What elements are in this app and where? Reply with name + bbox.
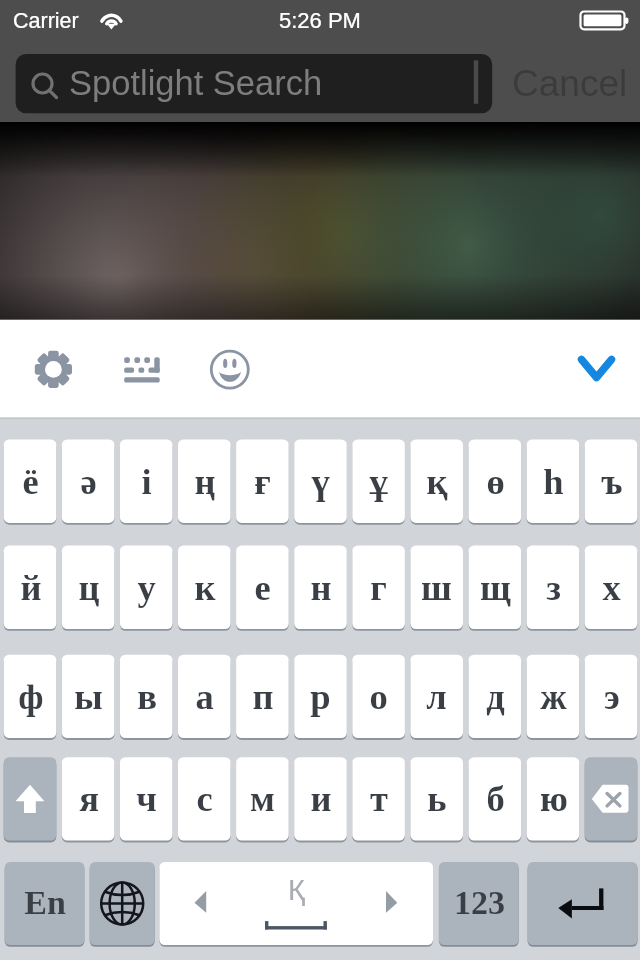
- button[interactable]: е: [236, 546, 289, 629]
- button[interactable]: Backspace: [585, 757, 638, 840]
- staticText: в: [137, 676, 157, 716]
- button[interactable]: 123: [439, 862, 519, 945]
- button[interactable]: ю: [527, 757, 580, 840]
- staticText: д: [486, 676, 505, 716]
- button[interactable]: э: [585, 655, 638, 738]
- staticText: л: [426, 676, 447, 716]
- staticText: а: [195, 676, 214, 716]
- staticText: э: [604, 676, 620, 716]
- button[interactable]: Shift: [4, 757, 57, 840]
- staticText: ә: [80, 461, 97, 501]
- staticText: к: [194, 567, 216, 607]
- staticText: щ: [480, 567, 511, 607]
- button[interactable]: ұ: [352, 440, 405, 523]
- button[interactable]: і: [120, 440, 173, 523]
- button[interactable]: Space: [159, 862, 433, 945]
- button[interactable]: н: [294, 546, 347, 629]
- staticText: һ: [543, 461, 564, 501]
- button[interactable]: Spotlight Search: [15, 54, 492, 113]
- staticText: ғ: [254, 461, 271, 501]
- staticText: я: [79, 778, 99, 818]
- staticText: г: [370, 567, 387, 607]
- button[interactable]: и: [294, 757, 347, 840]
- button[interactable]: о: [352, 655, 405, 738]
- button[interactable]: ч: [120, 757, 173, 840]
- staticText: п: [252, 676, 274, 716]
- staticText: 123: [454, 884, 505, 922]
- button[interactable]: Return: [528, 862, 638, 945]
- staticText: н: [310, 567, 332, 607]
- staticText: ц: [78, 567, 100, 607]
- staticText: ь: [427, 778, 447, 818]
- button[interactable]: к: [178, 546, 231, 629]
- button[interactable]: Hide keyboard: [568, 342, 625, 397]
- button[interactable]: ь: [410, 757, 463, 840]
- staticText: 5:26 PM: [279, 8, 361, 33]
- button[interactable]: б: [469, 757, 522, 840]
- button[interactable]: п: [236, 655, 289, 738]
- button[interactable]: с: [178, 757, 231, 840]
- staticText: ф: [18, 676, 44, 716]
- staticText: Cancel: [512, 63, 628, 104]
- button[interactable]: т: [352, 757, 405, 840]
- staticText: ы: [74, 676, 103, 716]
- button[interactable]: Cancel: [505, 54, 635, 113]
- staticText: ұ: [369, 461, 388, 501]
- staticText: ж: [540, 676, 567, 716]
- button[interactable]: Keyboard layout: [117, 345, 166, 394]
- staticText: ө: [486, 461, 505, 501]
- button[interactable]: Emoji: [206, 345, 255, 394]
- staticText: Қ: [288, 874, 305, 906]
- button[interactable]: щ: [469, 546, 522, 629]
- staticText: ң: [194, 461, 216, 501]
- button[interactable]: ң: [178, 440, 231, 523]
- button[interactable]: ә: [62, 440, 115, 523]
- staticText: ё: [22, 461, 39, 501]
- button[interactable]: En: [5, 862, 85, 945]
- button[interactable]: һ: [527, 440, 580, 523]
- staticText: р: [310, 676, 331, 716]
- button[interactable]: м: [236, 757, 289, 840]
- button[interactable]: қ: [410, 440, 463, 523]
- button[interactable]: а: [178, 655, 231, 738]
- staticText: ъ: [601, 461, 623, 501]
- button[interactable]: у: [120, 546, 173, 629]
- staticText: ч: [136, 778, 157, 818]
- button[interactable]: я: [62, 757, 115, 840]
- button[interactable]: р: [294, 655, 347, 738]
- button[interactable]: ө: [469, 440, 522, 523]
- button[interactable]: х: [585, 546, 638, 629]
- staticText: т: [370, 778, 388, 818]
- button[interactable]: д: [469, 655, 522, 738]
- button[interactable]: г: [352, 546, 405, 629]
- staticText: о: [369, 676, 388, 716]
- staticText: х: [602, 567, 621, 607]
- staticText: с: [196, 778, 213, 818]
- staticText: ү: [311, 461, 330, 501]
- button[interactable]: ш: [410, 546, 463, 629]
- button[interactable]: Next keyboard: [90, 862, 155, 945]
- staticText: ю: [540, 778, 568, 818]
- staticText: б: [486, 778, 505, 818]
- staticText: и: [310, 778, 332, 818]
- staticText: у: [137, 567, 156, 607]
- button[interactable]: л: [410, 655, 463, 738]
- button[interactable]: в: [120, 655, 173, 738]
- button[interactable]: ү: [294, 440, 347, 523]
- staticText: і: [141, 461, 152, 501]
- button[interactable]: з: [527, 546, 580, 629]
- button[interactable]: й: [4, 546, 57, 629]
- button[interactable]: ж: [527, 655, 580, 738]
- staticText: ш: [421, 567, 452, 607]
- button[interactable]: ғ: [236, 440, 289, 523]
- button[interactable]: ъ: [585, 440, 638, 523]
- button[interactable]: ы: [62, 655, 115, 738]
- staticText: м: [250, 778, 275, 818]
- button[interactable]: ё: [4, 440, 57, 523]
- button[interactable]: ф: [4, 655, 57, 738]
- staticText: з: [546, 567, 561, 607]
- staticText: Carrier: [13, 9, 79, 33]
- button[interactable]: Settings: [29, 345, 78, 394]
- button[interactable]: ц: [62, 546, 115, 629]
- staticText: е: [254, 567, 271, 607]
